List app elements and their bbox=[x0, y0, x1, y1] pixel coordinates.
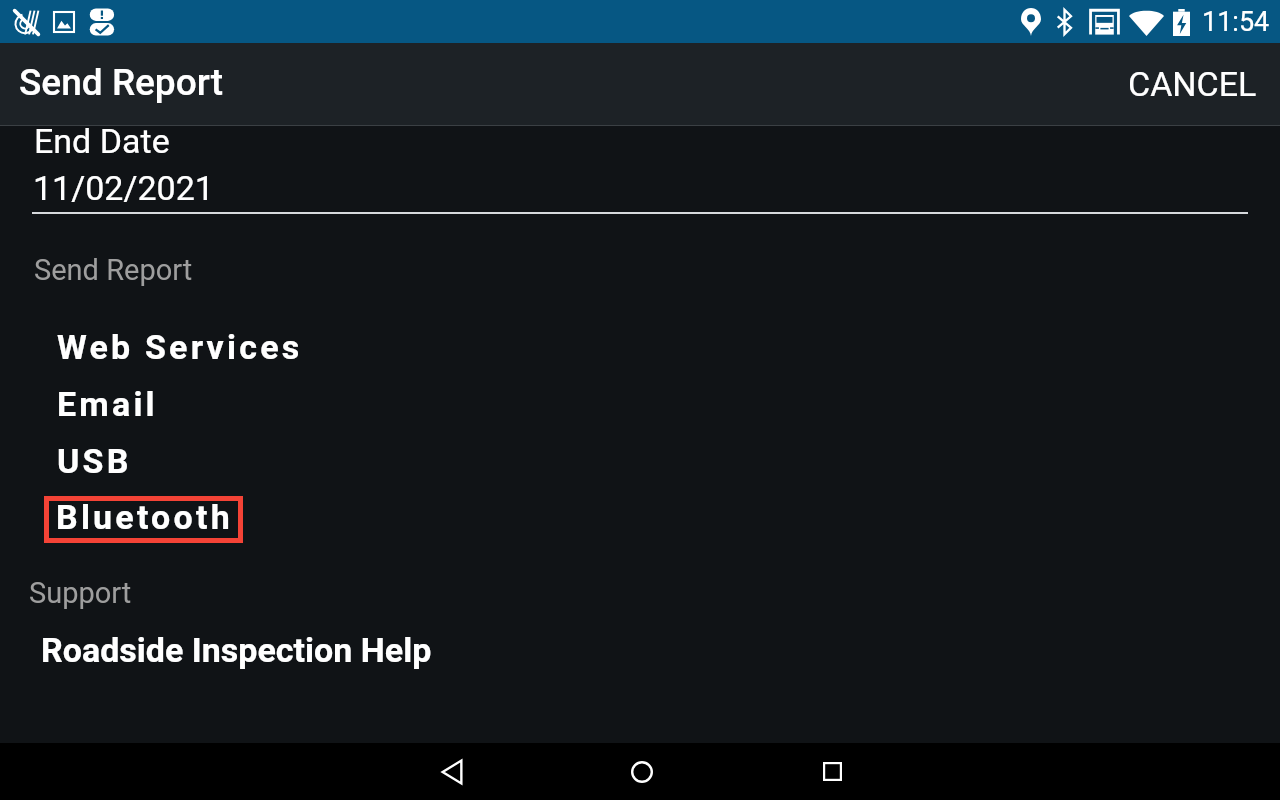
button[interactable]: Home bbox=[544, 743, 736, 800]
staticText: USB bbox=[57, 441, 132, 481]
staticText: Web Services bbox=[57, 327, 303, 367]
button[interactable]: Email bbox=[0, 384, 1280, 429]
button[interactable]: Web Services bbox=[0, 327, 1280, 372]
staticText: CANCEL bbox=[1128, 64, 1257, 104]
staticText: 11:54 bbox=[1202, 6, 1270, 38]
button[interactable]: USB bbox=[0, 441, 1280, 486]
button[interactable]: Recents bbox=[736, 743, 928, 800]
staticText: 11/02/2021 bbox=[33, 168, 214, 208]
staticText: Bluetooth bbox=[56, 497, 233, 537]
button[interactable]: Back bbox=[352, 743, 544, 800]
button[interactable]: CANCEL bbox=[1105, 50, 1280, 118]
button[interactable]: Roadside Inspection Help bbox=[0, 624, 1280, 669]
staticText: Send Report bbox=[34, 253, 193, 287]
staticText: End Date bbox=[34, 126, 170, 161]
staticText: Email bbox=[57, 384, 158, 424]
staticText: Support bbox=[29, 576, 132, 610]
button[interactable]: Bluetooth bbox=[44, 496, 243, 543]
staticText: Roadside Inspection Help bbox=[41, 630, 432, 670]
staticText: Send Report bbox=[19, 61, 223, 104]
